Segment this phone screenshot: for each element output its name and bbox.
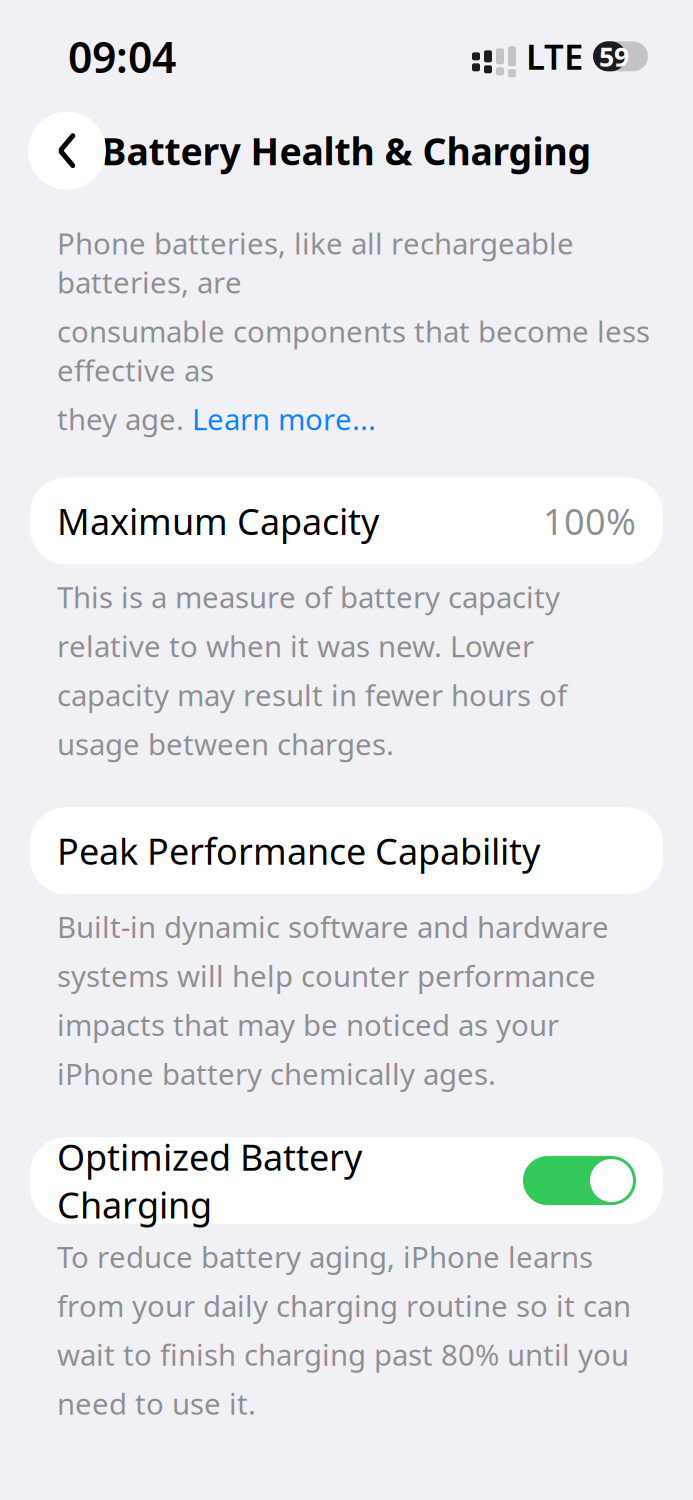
staticText: 100% (543, 497, 636, 545)
staticText: they age. (57, 399, 192, 438)
staticText: To reduce battery aging, iPhone learns f… (57, 1237, 631, 1423)
staticText: consumable components that become less e… (57, 312, 650, 389)
button[interactable]: Optimized Battery Charging (30, 1137, 663, 1224)
button[interactable]: Maximum Capacity (30, 477, 663, 564)
staticText: Battery Health & Charging (101, 126, 591, 175)
button[interactable]: Peak Performance Capability (30, 807, 663, 894)
staticText: 59 (599, 39, 629, 74)
staticText: Built-in dynamic software and hardware s… (57, 907, 609, 1093)
button[interactable]: Back (28, 112, 106, 190)
staticText: Maximum Capacity (57, 497, 379, 545)
staticText: This is a measure of battery capacity re… (57, 577, 567, 763)
staticText: LTE (526, 33, 583, 79)
button[interactable]: Learn more... (192, 399, 376, 438)
staticText: 09:04 (68, 28, 176, 85)
staticText: Optimized Battery Charging (57, 1133, 362, 1228)
staticText: Learn more... (192, 399, 376, 438)
staticText: Peak Performance Capability (57, 827, 540, 875)
staticText: Phone batteries, like all rechargeable b… (57, 224, 574, 302)
